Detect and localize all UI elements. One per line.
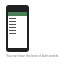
button[interactable] <box>9 23 26 26</box>
staticText: You can have the best of both worlds <box>6 54 59 58</box>
button[interactable] <box>9 32 26 35</box>
button[interactable] <box>9 29 26 32</box>
button[interactable] <box>9 17 26 20</box>
button[interactable] <box>9 26 26 29</box>
button[interactable] <box>9 20 26 23</box>
